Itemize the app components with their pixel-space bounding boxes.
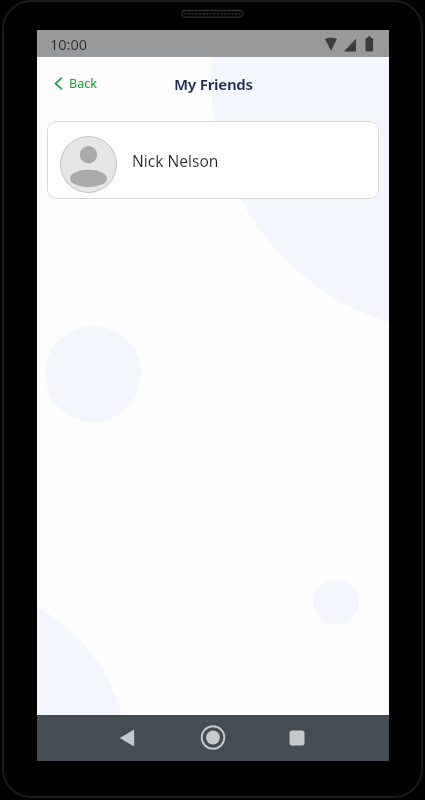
staticText: Nick Nelson	[132, 150, 219, 171]
button[interactable]: Back	[50, 71, 103, 96]
button[interactable]	[273, 715, 321, 761]
staticText: Back	[69, 75, 97, 92]
button[interactable]	[103, 715, 151, 761]
staticText: 10:00	[50, 34, 88, 54]
staticText: My Friends	[174, 74, 253, 94]
button[interactable]: Nick Nelson	[47, 121, 379, 199]
button[interactable]	[189, 715, 237, 761]
